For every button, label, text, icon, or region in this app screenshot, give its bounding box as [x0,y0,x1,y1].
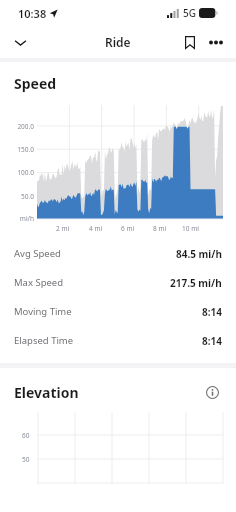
button[interactable]: Avg Speed [0,239,236,268]
staticText: 5G [183,6,196,20]
button[interactable]: Collapse [7,29,33,55]
staticText: 217.5 mi/h [170,276,222,290]
staticText: 6 mi [121,224,135,233]
staticText: Avg Speed [14,247,61,260]
staticText: 50.0 [0,192,34,201]
staticText: Ride [105,34,131,50]
button[interactable]: More options [203,29,229,55]
staticText: Elevation [14,383,79,402]
staticText: 4 mi [89,224,103,233]
staticText: 84.5 mi/h [176,247,222,261]
staticText: 10 mi [182,224,199,233]
staticText: 200.0 [0,122,34,131]
staticText: 50 [22,455,30,464]
staticText: 8:14 [202,305,222,319]
staticText: Moving Time [14,305,72,318]
staticText: 60 [22,431,30,440]
button[interactable]: Max Speed [0,268,236,297]
staticText: Speed [14,74,57,93]
staticText: 150.0 [0,145,34,154]
button[interactable]: Save [177,29,203,55]
button[interactable]: Elevation info [202,382,222,402]
button[interactable]: Elapsed Time [0,326,236,355]
staticText: mi/h [0,214,34,223]
staticText: 10:38 [18,6,47,21]
staticText: 2 mi [56,224,70,233]
staticText: 8:14 [202,334,222,348]
staticText: Max Speed [14,276,64,289]
button[interactable]: Moving Time [0,297,236,326]
staticText: 100.0 [0,168,34,177]
staticText: 8 mi [153,224,167,233]
staticText: Elapsed Time [14,334,74,347]
